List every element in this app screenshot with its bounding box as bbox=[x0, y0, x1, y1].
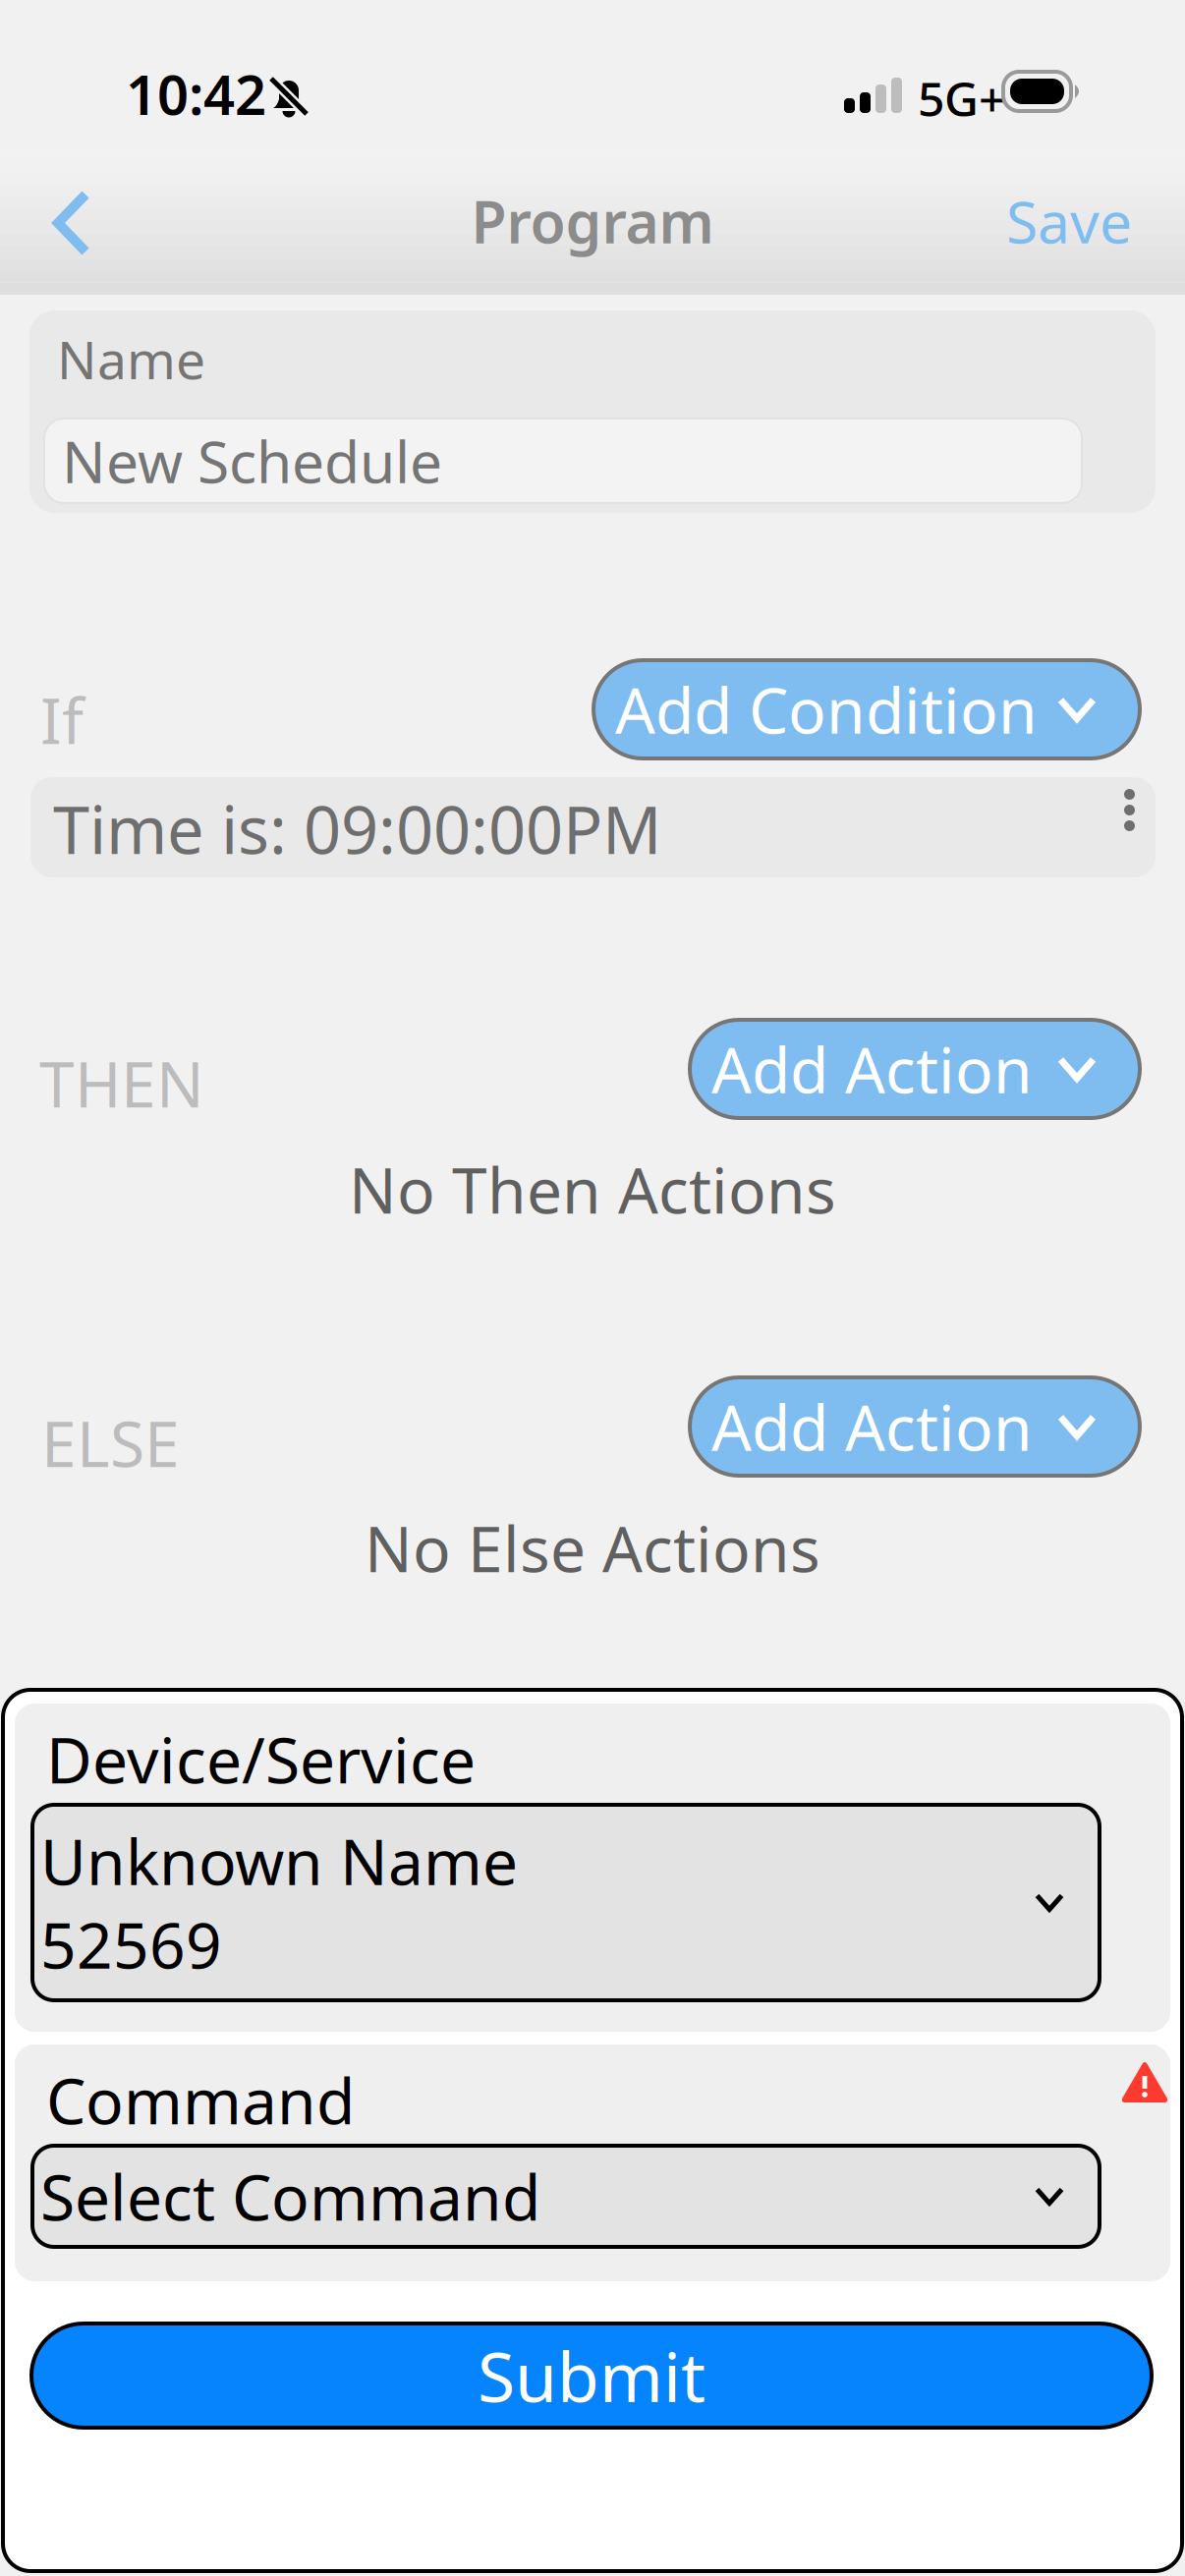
button[interactable]: Add Condition bbox=[593, 660, 1140, 758]
staticText: Unknown Name bbox=[40, 1819, 518, 1903]
staticText: New Schedule bbox=[62, 422, 442, 499]
staticText: Name bbox=[57, 324, 205, 394]
button[interactable]: Add Action bbox=[690, 1377, 1140, 1476]
staticText: Add Action bbox=[711, 1385, 1033, 1468]
staticText: Add Action bbox=[711, 1027, 1033, 1111]
staticText: Select Command bbox=[40, 2155, 540, 2238]
staticText: 52569 bbox=[40, 1903, 222, 1986]
staticText: ELSE bbox=[41, 1401, 180, 1484]
staticText: 5G+ bbox=[918, 67, 1005, 129]
staticText: 10:42 bbox=[126, 57, 266, 130]
staticText: Command bbox=[46, 2058, 355, 2142]
button[interactable]: Unknown Name bbox=[32, 1805, 1100, 2000]
staticText: Add Condition bbox=[615, 668, 1038, 751]
button[interactable]: Submit bbox=[31, 2324, 1152, 2428]
staticText: Program bbox=[471, 183, 714, 259]
staticText: Device/Service bbox=[46, 1717, 476, 1801]
button[interactable]: Back bbox=[0, 149, 143, 297]
button[interactable]: Save bbox=[955, 147, 1132, 295]
staticText: Time is: 09:00:00PM bbox=[53, 785, 661, 872]
staticText: No Then Actions bbox=[349, 1148, 836, 1231]
staticText: THEN bbox=[39, 1041, 204, 1125]
staticText: If bbox=[40, 678, 84, 761]
staticText: Save bbox=[1006, 183, 1132, 259]
button[interactable]: Add Action bbox=[690, 1020, 1140, 1118]
button[interactable]: Select Command bbox=[32, 2146, 1100, 2247]
staticText: Submit bbox=[478, 2330, 705, 2421]
staticText: No Else Actions bbox=[365, 1506, 820, 1590]
